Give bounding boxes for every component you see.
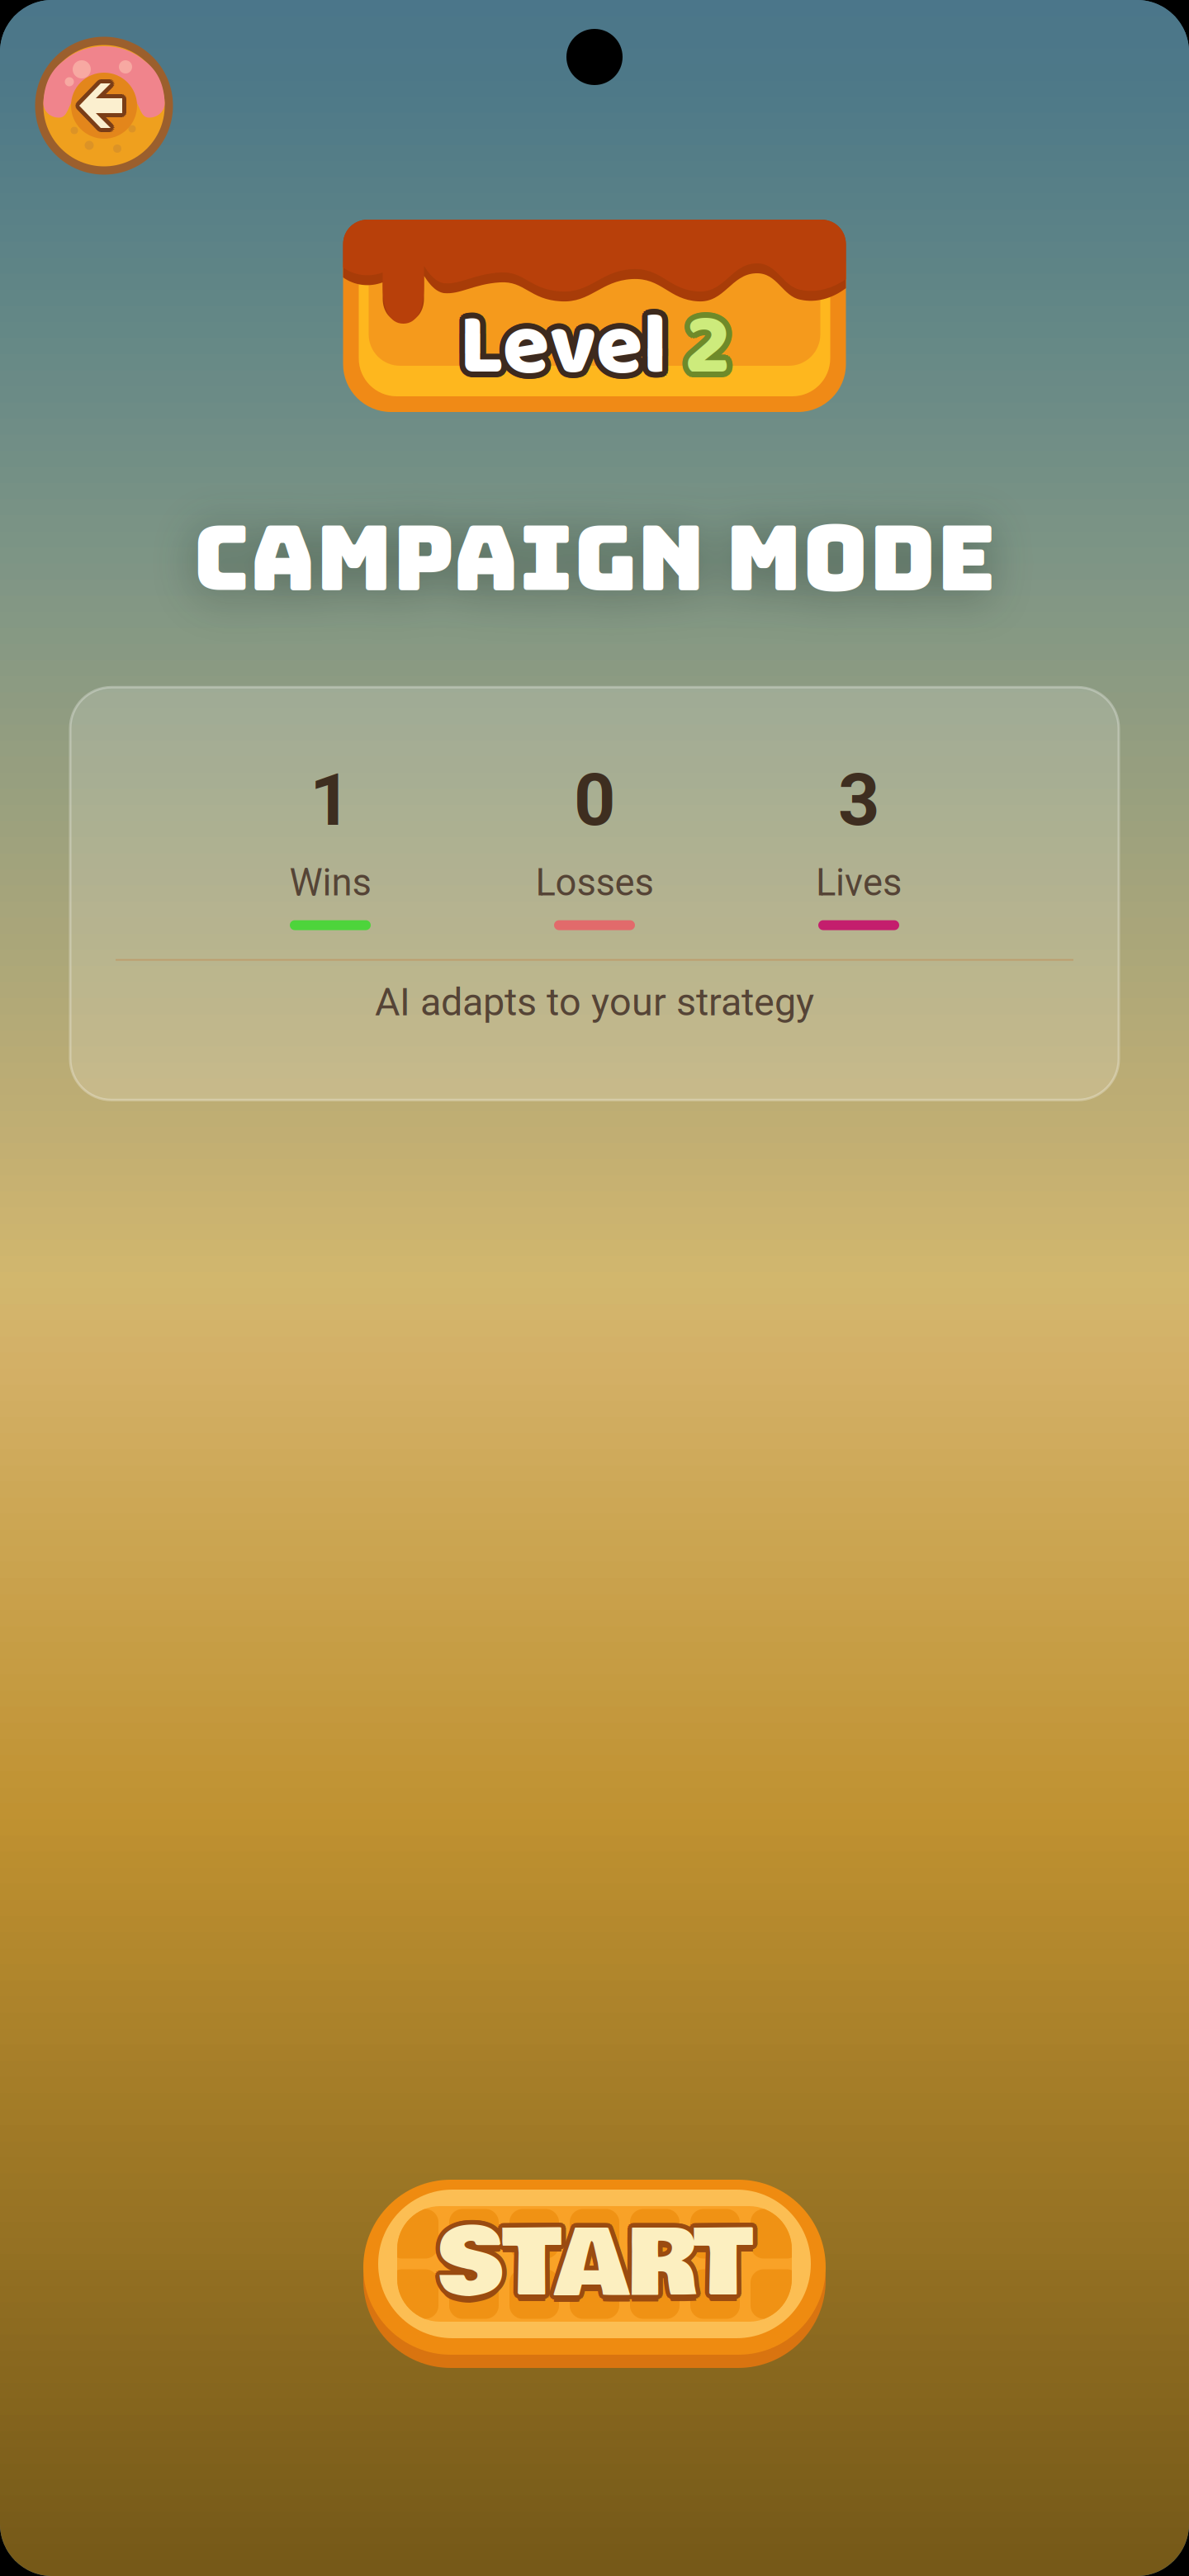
staticText: START (439, 2197, 754, 2339)
staticText: 2 (664, 283, 725, 421)
staticText: 2 (670, 284, 732, 422)
staticText: Level (454, 281, 662, 419)
staticText: 2 (668, 285, 730, 422)
staticText: START (441, 2191, 756, 2333)
staticText: Level (454, 279, 662, 417)
staticText: 2 (670, 274, 732, 411)
staticText: Level (465, 281, 673, 419)
staticText: START (435, 2197, 750, 2339)
staticText: 3 (838, 757, 879, 842)
staticText: 1 (310, 757, 351, 842)
staticText: 2 (665, 274, 727, 411)
staticText: START (437, 2193, 752, 2335)
staticText: Level (465, 277, 673, 414)
staticText: Level (464, 275, 672, 413)
staticText: 0 (574, 757, 615, 842)
staticText: Level (459, 285, 668, 422)
staticText: START (433, 2191, 748, 2333)
staticText: Wins (289, 861, 371, 904)
staticText: 2 (673, 281, 735, 419)
staticText: 2 (673, 277, 735, 414)
staticText: Level (455, 283, 664, 421)
button[interactable]: START (363, 2173, 826, 2361)
staticText: 2 (664, 275, 725, 413)
staticText: START (441, 2195, 756, 2336)
staticText: 2 (673, 279, 735, 417)
staticText: 2 (662, 277, 724, 414)
staticText: Level (457, 274, 665, 411)
staticText: Level (459, 273, 668, 411)
button[interactable]: Back (27, 29, 181, 182)
staticText: START (433, 2193, 747, 2335)
staticText: 2 (665, 284, 727, 422)
staticText: Level (462, 284, 670, 422)
staticText: START (440, 2190, 755, 2331)
staticText: Level (454, 277, 662, 414)
staticText: START (433, 2195, 748, 2336)
staticText: START (437, 2198, 752, 2339)
staticText: Level (464, 283, 672, 421)
staticText: START (442, 2193, 756, 2335)
staticText: AI adapts to your strategy (375, 980, 814, 1025)
staticText: START (434, 2190, 749, 2331)
staticText: 2 (662, 281, 724, 419)
staticText: Level (459, 279, 668, 417)
staticText: Lives (816, 861, 902, 904)
staticText: Losses (535, 861, 654, 904)
staticText: 2 (662, 279, 724, 417)
staticText: START (440, 2196, 755, 2338)
staticText: START (434, 2196, 749, 2338)
staticText: 2 (668, 273, 730, 411)
staticText: Level (455, 275, 664, 413)
staticText: 2 (672, 275, 734, 413)
staticText: Level (465, 279, 673, 417)
staticText: START (435, 2189, 750, 2330)
staticText: START (439, 2189, 754, 2330)
staticText: Level (457, 284, 665, 422)
staticText: 2 (672, 283, 734, 421)
staticText: 2 (668, 279, 730, 417)
staticText: CAMPAIGN MODE (193, 498, 996, 617)
staticText: START (437, 2189, 752, 2330)
staticText: START (437, 2200, 752, 2341)
staticText: Level (462, 274, 670, 411)
